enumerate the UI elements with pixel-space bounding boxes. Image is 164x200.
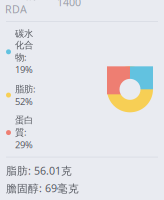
staticText: 蛋白質: 29% xyxy=(15,114,33,151)
staticText: 碳水化合物: 19% xyxy=(15,28,33,76)
staticText: 脂肪: 52% xyxy=(15,83,36,107)
staticText: 1400 xyxy=(57,0,81,9)
staticText: 膽固醇: 69毫克 xyxy=(6,181,79,195)
staticText: 68%的RDA xyxy=(5,0,37,16)
staticText: 脂肪: 56.01克 xyxy=(6,163,72,178)
